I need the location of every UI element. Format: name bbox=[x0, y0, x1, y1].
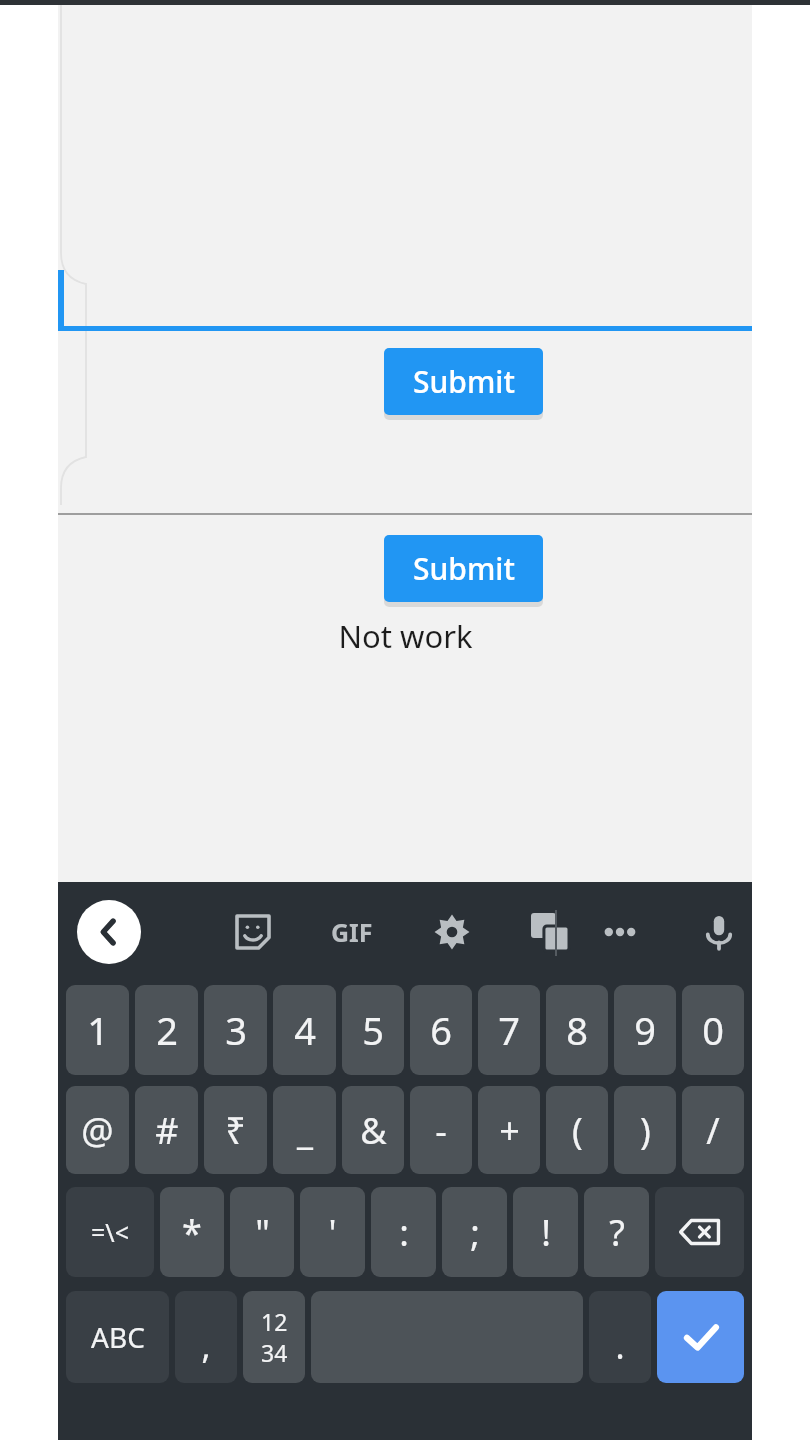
button[interactable]: " bbox=[230, 1187, 294, 1277]
staticText: ₹ bbox=[225, 1106, 246, 1155]
button[interactable]: =\< bbox=[66, 1187, 154, 1277]
staticText: 5 bbox=[362, 1004, 384, 1056]
staticText: , bbox=[201, 1323, 211, 1369]
button[interactable]: Back bbox=[77, 900, 141, 964]
button[interactable]: 5 bbox=[342, 985, 404, 1075]
staticText: ( bbox=[572, 1106, 583, 1155]
button[interactable]: Enter bbox=[657, 1291, 744, 1383]
staticText: - bbox=[435, 1106, 447, 1155]
button[interactable]: More options bbox=[588, 900, 652, 964]
button[interactable]: Translate bbox=[518, 900, 582, 964]
button[interactable]: . bbox=[589, 1291, 651, 1383]
staticText: 7 bbox=[498, 1004, 520, 1056]
button[interactable]: 8 bbox=[546, 985, 608, 1075]
button[interactable]: + bbox=[478, 1086, 540, 1174]
button[interactable]: - bbox=[410, 1086, 472, 1174]
button[interactable]: Backspace bbox=[655, 1187, 744, 1277]
button[interactable]: * bbox=[160, 1187, 224, 1277]
button[interactable]: GIF bbox=[320, 900, 384, 964]
button[interactable]: ) bbox=[614, 1086, 676, 1174]
button[interactable]: ( bbox=[546, 1086, 608, 1174]
staticText: 34 bbox=[261, 1337, 288, 1368]
staticText: _ bbox=[297, 1106, 313, 1155]
staticText: Submit bbox=[413, 548, 515, 589]
staticText: . bbox=[615, 1323, 625, 1369]
staticText: 4 bbox=[294, 1004, 316, 1056]
staticText: 0 bbox=[702, 1004, 724, 1056]
button[interactable]: 2 bbox=[135, 985, 198, 1075]
button[interactable]: ! bbox=[513, 1187, 578, 1277]
staticText: GIF bbox=[331, 915, 373, 949]
button[interactable]: _ bbox=[273, 1086, 336, 1174]
button[interactable]: # bbox=[135, 1086, 198, 1174]
staticText: 9 bbox=[634, 1004, 656, 1056]
staticText: ; bbox=[470, 1208, 480, 1257]
button[interactable]: Numbers bbox=[243, 1291, 305, 1383]
staticText: ) bbox=[640, 1106, 651, 1155]
staticText: 8 bbox=[566, 1004, 588, 1056]
button[interactable]: ' bbox=[300, 1187, 365, 1277]
button[interactable]: ? bbox=[584, 1187, 649, 1277]
button[interactable]: ₹ bbox=[204, 1086, 267, 1174]
button[interactable]: Stickers bbox=[221, 900, 285, 964]
button[interactable]: 6 bbox=[410, 985, 472, 1075]
staticText: Not work bbox=[338, 615, 473, 657]
staticText: 1 bbox=[87, 1004, 109, 1056]
staticText: : bbox=[399, 1208, 409, 1257]
button[interactable]: Submit bbox=[384, 348, 543, 415]
button[interactable]: @ bbox=[66, 1086, 129, 1174]
staticText: # bbox=[155, 1106, 179, 1155]
staticText: Submit bbox=[413, 361, 515, 402]
staticText: ABC bbox=[91, 1318, 145, 1356]
staticText: * bbox=[182, 1208, 202, 1257]
button[interactable]: 7 bbox=[478, 985, 540, 1075]
button[interactable]: 3 bbox=[204, 985, 267, 1075]
staticText: 3 bbox=[225, 1004, 247, 1056]
staticText: 12 bbox=[261, 1306, 288, 1337]
staticText: 2 bbox=[156, 1004, 178, 1056]
button[interactable]: , bbox=[175, 1291, 237, 1383]
staticText: ' bbox=[328, 1208, 337, 1257]
button[interactable]: ; bbox=[442, 1187, 507, 1277]
button[interactable]: 9 bbox=[614, 985, 676, 1075]
staticText: " bbox=[255, 1208, 270, 1257]
staticText: ! bbox=[541, 1208, 551, 1257]
button[interactable]: Settings bbox=[420, 900, 484, 964]
staticText: @ bbox=[81, 1106, 114, 1155]
staticText: 6 bbox=[430, 1004, 452, 1056]
button[interactable]: Voice input bbox=[687, 900, 751, 964]
button[interactable]: & bbox=[342, 1086, 404, 1174]
button[interactable]: ABC bbox=[66, 1291, 169, 1383]
staticText: =\< bbox=[91, 1215, 129, 1249]
staticText: & bbox=[360, 1106, 387, 1155]
button[interactable]: / bbox=[682, 1086, 744, 1174]
staticText: + bbox=[499, 1106, 520, 1155]
button[interactable]: 4 bbox=[273, 985, 336, 1075]
button[interactable]: 0 bbox=[682, 985, 744, 1075]
staticText: / bbox=[706, 1106, 720, 1155]
staticText: ? bbox=[609, 1208, 625, 1257]
button[interactable]: Submit bbox=[384, 535, 543, 602]
button[interactable]: : bbox=[371, 1187, 436, 1277]
button[interactable]: 1 bbox=[66, 985, 129, 1075]
